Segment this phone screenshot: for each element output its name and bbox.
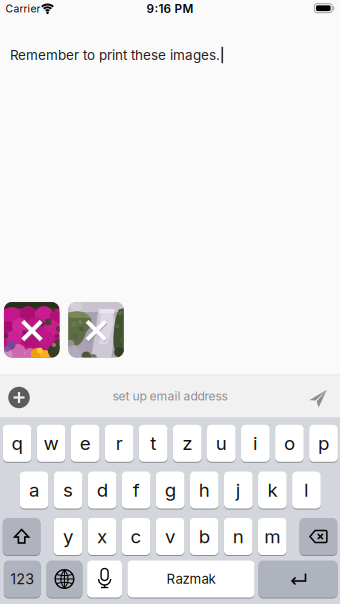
staticText: q	[12, 432, 23, 455]
button[interactable]: Razmak	[127, 559, 255, 598]
staticText: Remember to print these images.	[10, 47, 220, 63]
button[interactable]: m	[258, 517, 287, 556]
staticText: 9:16 PM	[146, 2, 193, 16]
button[interactable]	[258, 559, 337, 598]
button[interactable]: p	[309, 424, 338, 463]
button[interactable]	[87, 559, 122, 598]
button[interactable]: e	[71, 424, 99, 463]
button[interactable]: h	[190, 470, 219, 509]
button[interactable]: b	[190, 517, 218, 556]
staticText: w	[44, 432, 59, 455]
button[interactable]: n	[224, 517, 252, 556]
staticText: s	[63, 479, 73, 501]
staticText: 123	[10, 570, 34, 588]
button[interactable]: c	[122, 517, 150, 556]
button[interactable]: s	[54, 470, 82, 509]
button[interactable]: x	[88, 517, 116, 556]
button[interactable]: o	[275, 424, 304, 463]
staticText: c	[130, 525, 141, 548]
button[interactable]: z	[173, 424, 202, 463]
button[interactable]	[3, 517, 40, 556]
button[interactable]: l	[292, 470, 321, 509]
button[interactable]: v	[156, 517, 184, 556]
button[interactable]: d	[88, 470, 116, 509]
staticText: t	[150, 432, 156, 455]
staticText: e	[80, 432, 91, 455]
button[interactable]	[307, 387, 329, 409]
button[interactable]: k	[258, 470, 287, 509]
button[interactable]: q	[3, 424, 31, 463]
button[interactable]: w	[37, 424, 65, 463]
button[interactable]: u	[207, 424, 236, 463]
button[interactable]: 123	[4, 559, 41, 598]
button[interactable]	[4, 302, 59, 358]
staticText: j	[236, 479, 241, 501]
staticText: z	[182, 432, 192, 455]
button[interactable]: f	[122, 470, 150, 509]
staticText: n	[233, 525, 244, 548]
button[interactable]: a	[20, 470, 48, 509]
button[interactable]: i	[241, 424, 270, 463]
button[interactable]	[5, 383, 33, 411]
staticText: b	[199, 525, 210, 548]
button[interactable]: g	[156, 470, 185, 509]
staticText: Carrier	[5, 2, 40, 15]
staticText: d	[97, 479, 108, 501]
button[interactable]: j	[224, 470, 253, 509]
staticText: l	[304, 479, 309, 501]
staticText: k	[267, 479, 277, 501]
staticText: y	[63, 525, 73, 548]
staticText: m	[264, 525, 280, 548]
staticText: a	[29, 479, 39, 501]
button[interactable]	[68, 302, 124, 358]
staticText: h	[199, 479, 210, 501]
button[interactable]: set up email address	[60, 381, 280, 411]
staticText: f	[133, 479, 140, 501]
staticText: r	[116, 432, 123, 455]
staticText: o	[284, 432, 295, 455]
staticText: u	[216, 432, 227, 455]
staticText: set up email address	[112, 389, 227, 403]
button[interactable]	[47, 559, 82, 598]
staticText: p	[318, 432, 329, 455]
staticText: v	[165, 525, 175, 548]
button[interactable]: t	[139, 424, 168, 463]
button[interactable]	[300, 517, 337, 556]
staticText: x	[97, 525, 107, 548]
button[interactable]: y	[54, 517, 82, 556]
staticText: i	[253, 432, 258, 455]
button[interactable]: r	[105, 424, 133, 463]
staticText: Razmak	[166, 571, 215, 587]
staticText: g	[165, 479, 176, 501]
